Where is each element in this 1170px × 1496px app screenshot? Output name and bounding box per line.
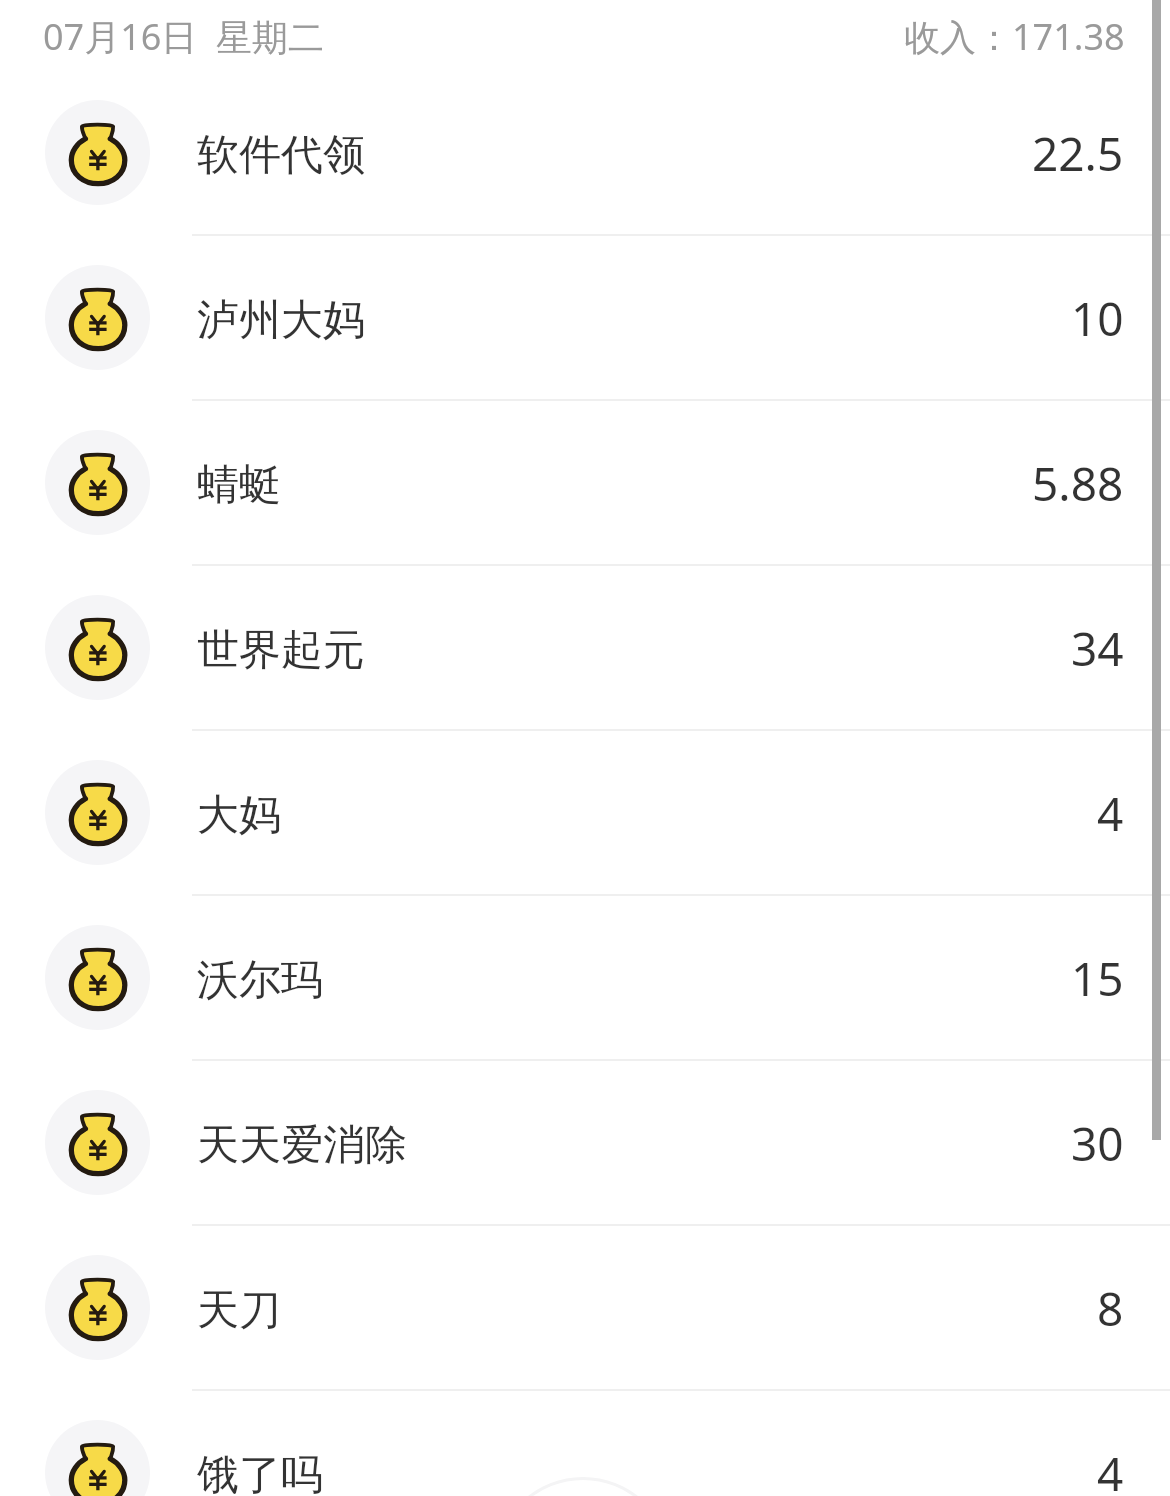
staticText: 15 [1071,947,1124,1010]
other: Income [68,1113,128,1174]
staticText: 软件代领 [197,129,365,182]
staticText: 4 [1097,782,1124,845]
staticText: 22.5 [1032,122,1124,185]
staticText: 蜻蜓 [197,459,281,512]
button[interactable]: Income [0,236,1170,399]
other: Income [68,123,128,184]
staticText: 30 [1071,1112,1124,1175]
other: Income [68,1278,128,1339]
staticText: 4 [1097,1442,1124,1496]
staticText: 泸州大妈 [197,294,365,347]
staticText: 收入：171.38 [904,12,1125,61]
staticText: 世界起元 [197,624,365,677]
button[interactable]: Income [0,1391,1170,1496]
button[interactable]: Income [0,1226,1170,1389]
other: Income [68,783,128,844]
other: Income [68,948,128,1009]
button[interactable]: Income [0,401,1170,564]
button[interactable]: Income [0,1061,1170,1224]
other: Income [68,618,128,679]
staticText: 8 [1097,1277,1124,1340]
button[interactable]: Income [0,566,1170,729]
staticText: 天天爱消除 [197,1119,407,1172]
staticText: 饿了吗 [197,1449,323,1496]
staticText: 沃尔玛 [197,954,323,1007]
other: Income [68,453,128,514]
button[interactable]: Income [0,896,1170,1059]
button[interactable]: Income [0,731,1170,894]
button[interactable]: Income [0,71,1170,234]
staticText: 07月16日 星期二 [43,12,325,61]
staticText: 10 [1071,287,1124,350]
other: Income [68,288,128,349]
staticText: 大妈 [197,789,281,842]
staticText: 5.88 [1032,452,1124,515]
staticText: 34 [1071,617,1124,680]
staticText: 天刀 [197,1284,281,1337]
other: Income [68,1443,128,1496]
